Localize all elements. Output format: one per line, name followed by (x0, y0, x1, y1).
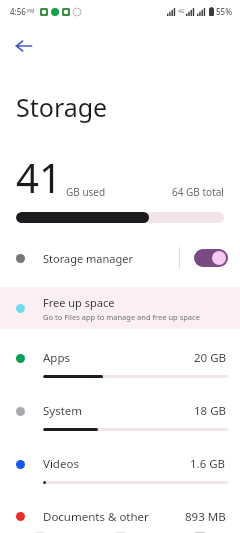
button[interactable]: Documents & other (0, 500, 240, 533)
staticText: GB used (66, 185, 106, 199)
button[interactable]: Storage manager toggle (194, 249, 228, 267)
staticText: PM (27, 8, 35, 15)
staticText: System (43, 403, 83, 419)
button[interactable]: Back (0, 22, 48, 70)
staticText: Go to Files app to manage and free up sp… (43, 312, 200, 322)
button[interactable]: System (0, 394, 240, 447)
staticText: Documents & other (43, 509, 149, 525)
button[interactable]: Videos (0, 447, 240, 500)
staticText: 64 GB total (172, 185, 224, 199)
staticText: 41 (16, 150, 62, 204)
staticText: 4G (178, 8, 185, 15)
staticText: Videos (43, 456, 79, 472)
staticText: Free up space (43, 295, 115, 310)
staticText: Storage (16, 90, 108, 124)
staticText: 893 MB (185, 509, 226, 525)
button[interactable]: Free up space (0, 287, 240, 329)
staticText: Storage manager (43, 251, 133, 266)
button[interactable]: Storage manager (0, 237, 240, 279)
staticText: 20 GB (194, 350, 226, 366)
staticText: Apps (43, 350, 71, 366)
staticText: 55% (216, 6, 232, 17)
staticText: 4:56 (10, 6, 26, 17)
staticText: 18 GB (194, 403, 226, 419)
button[interactable]: Apps (0, 341, 240, 394)
staticText: 1.6 GB (190, 456, 226, 472)
